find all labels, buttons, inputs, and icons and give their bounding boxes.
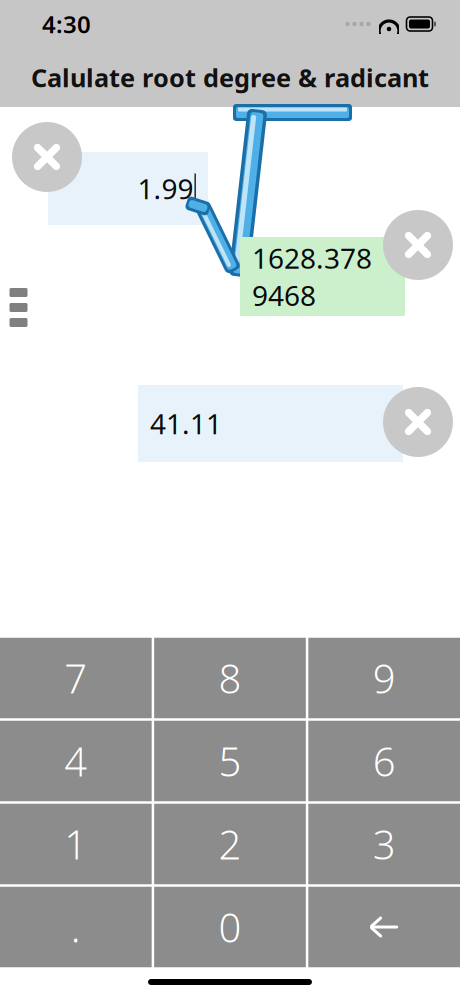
button[interactable]: 0 (154, 887, 306, 967)
staticText: 1.99 (137, 170, 193, 207)
button[interactable]: Clear root degree (12, 122, 82, 192)
button[interactable]: . (0, 887, 152, 967)
button[interactable]: Clear result (383, 387, 453, 457)
staticText: 5 (218, 734, 241, 787)
staticText: 4:30 (42, 8, 91, 40)
staticText: 9 (373, 651, 396, 704)
staticText: 2 (218, 817, 241, 870)
button[interactable]: 2 (154, 804, 306, 884)
button[interactable]: Clear radicant (383, 210, 453, 280)
button[interactable]: 6 (308, 721, 460, 801)
button[interactable]: 3 (308, 804, 460, 884)
staticText: 3 (373, 817, 396, 870)
staticText: . (71, 900, 81, 953)
staticText: Calulate root degree & radicant (31, 61, 429, 94)
staticText: 1 (64, 817, 87, 870)
button[interactable]: Backspace (308, 887, 460, 967)
button[interactable]: 4 (0, 721, 152, 801)
button[interactable]: 5 (154, 721, 306, 801)
staticText: 4 (64, 734, 87, 787)
button[interactable]: 9 (308, 638, 460, 718)
staticText: 8 (218, 651, 241, 704)
staticText: 41.11 (150, 405, 222, 442)
staticText: 1628.3789468 (252, 239, 372, 314)
staticText: 6 (373, 734, 396, 787)
button[interactable]: 1 (0, 804, 152, 884)
button[interactable]: 7 (0, 638, 152, 718)
staticText: 7 (64, 651, 87, 704)
staticText: 0 (218, 900, 241, 953)
button[interactable]: 8 (154, 638, 306, 718)
